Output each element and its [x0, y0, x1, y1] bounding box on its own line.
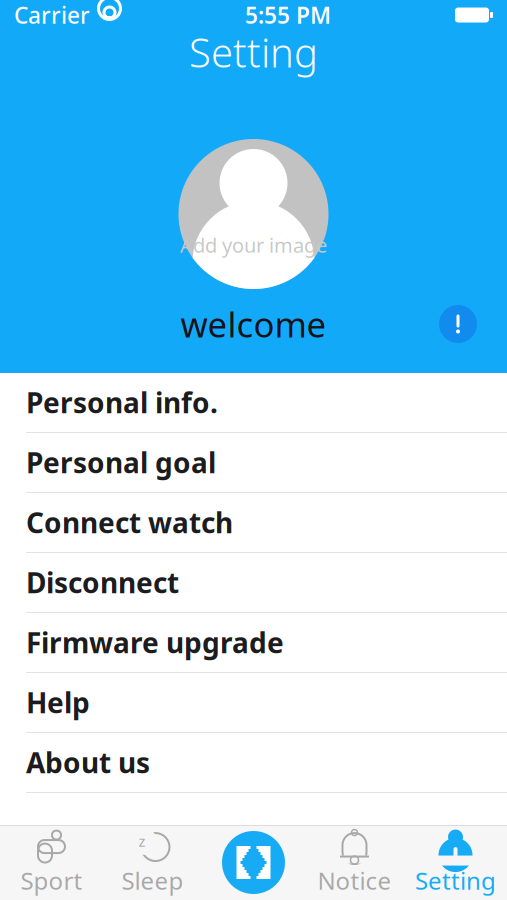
staticText: About us	[26, 744, 150, 781]
button[interactable]: Setting	[405, 825, 506, 899]
staticText: Connect watch	[26, 504, 233, 541]
button[interactable]: Notice	[304, 825, 405, 899]
staticText: Setting	[415, 865, 496, 896]
staticText: Sleep	[121, 865, 183, 896]
staticText: Carrier	[14, 0, 90, 30]
button[interactable]: Main action	[203, 825, 304, 899]
staticText: Notice	[317, 865, 391, 896]
button[interactable]: Sport	[1, 825, 102, 899]
button[interactable]: Firmware upgrade	[0, 613, 507, 673]
staticText: Firmware upgrade	[26, 624, 284, 661]
staticText: Disconnect	[26, 564, 179, 601]
button[interactable]: Disconnect	[0, 553, 507, 613]
staticText: Add your image	[180, 232, 327, 258]
staticText: Help	[26, 684, 90, 721]
button[interactable]: Help	[0, 673, 507, 733]
staticText: z	[138, 831, 145, 851]
staticText: Personal goal	[26, 444, 216, 481]
staticText: 5:55 PM	[245, 0, 331, 30]
button[interactable]: Personal goal	[0, 433, 507, 493]
button[interactable]: z	[102, 825, 203, 899]
staticText: welcome	[180, 301, 326, 347]
button[interactable]: Personal info.	[0, 373, 507, 433]
staticText: Setting	[189, 25, 318, 78]
button[interactable]: Information	[435, 301, 481, 347]
staticText: Personal info.	[26, 384, 218, 421]
button[interactable]: About us	[0, 733, 507, 793]
button[interactable]: Connect watch	[0, 493, 507, 553]
button[interactable]: Add your image	[178, 139, 328, 289]
staticText: Sport	[20, 865, 82, 896]
